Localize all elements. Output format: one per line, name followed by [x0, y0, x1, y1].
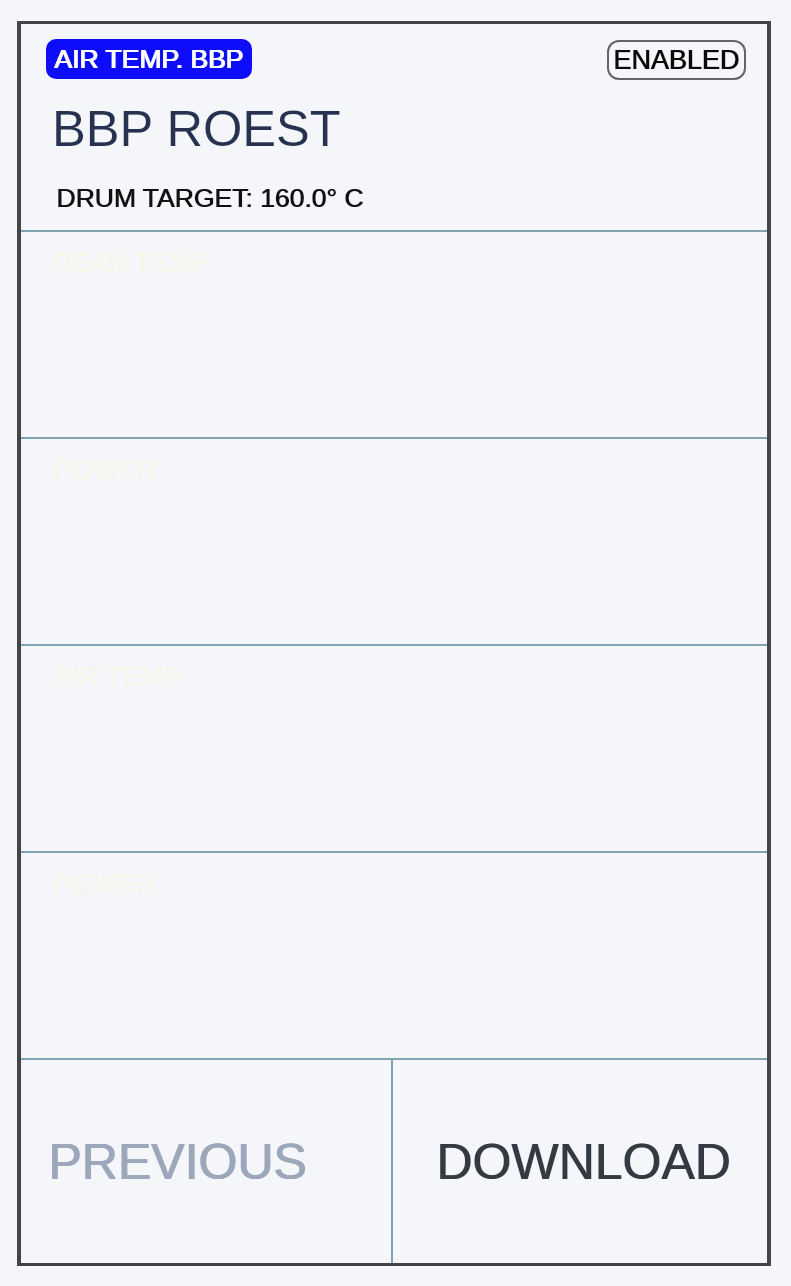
- button[interactable]: PREVIOUS: [21, 1060, 391, 1263]
- staticText: DRUM TARGET: 160.0° C: [56, 183, 364, 213]
- staticText: AIR TEMP.: [53, 661, 187, 692]
- staticText: POWER: [53, 454, 157, 485]
- button[interactable]: ENABLED: [607, 40, 746, 80]
- staticText: PREVIOUS: [48, 1134, 307, 1190]
- button[interactable]: AIR TEMP. BBP: [46, 39, 252, 79]
- staticText: BBP ROEST: [52, 100, 341, 157]
- staticText: DOWNLOAD: [436, 1134, 731, 1190]
- staticText: BEAN TEMP.: [53, 247, 216, 278]
- staticText: AIR TEMP. BBP: [54, 44, 244, 74]
- button[interactable]: DOWNLOAD: [393, 1060, 767, 1263]
- staticText: POWER: [53, 868, 157, 899]
- staticText: ENABLED: [613, 45, 740, 75]
